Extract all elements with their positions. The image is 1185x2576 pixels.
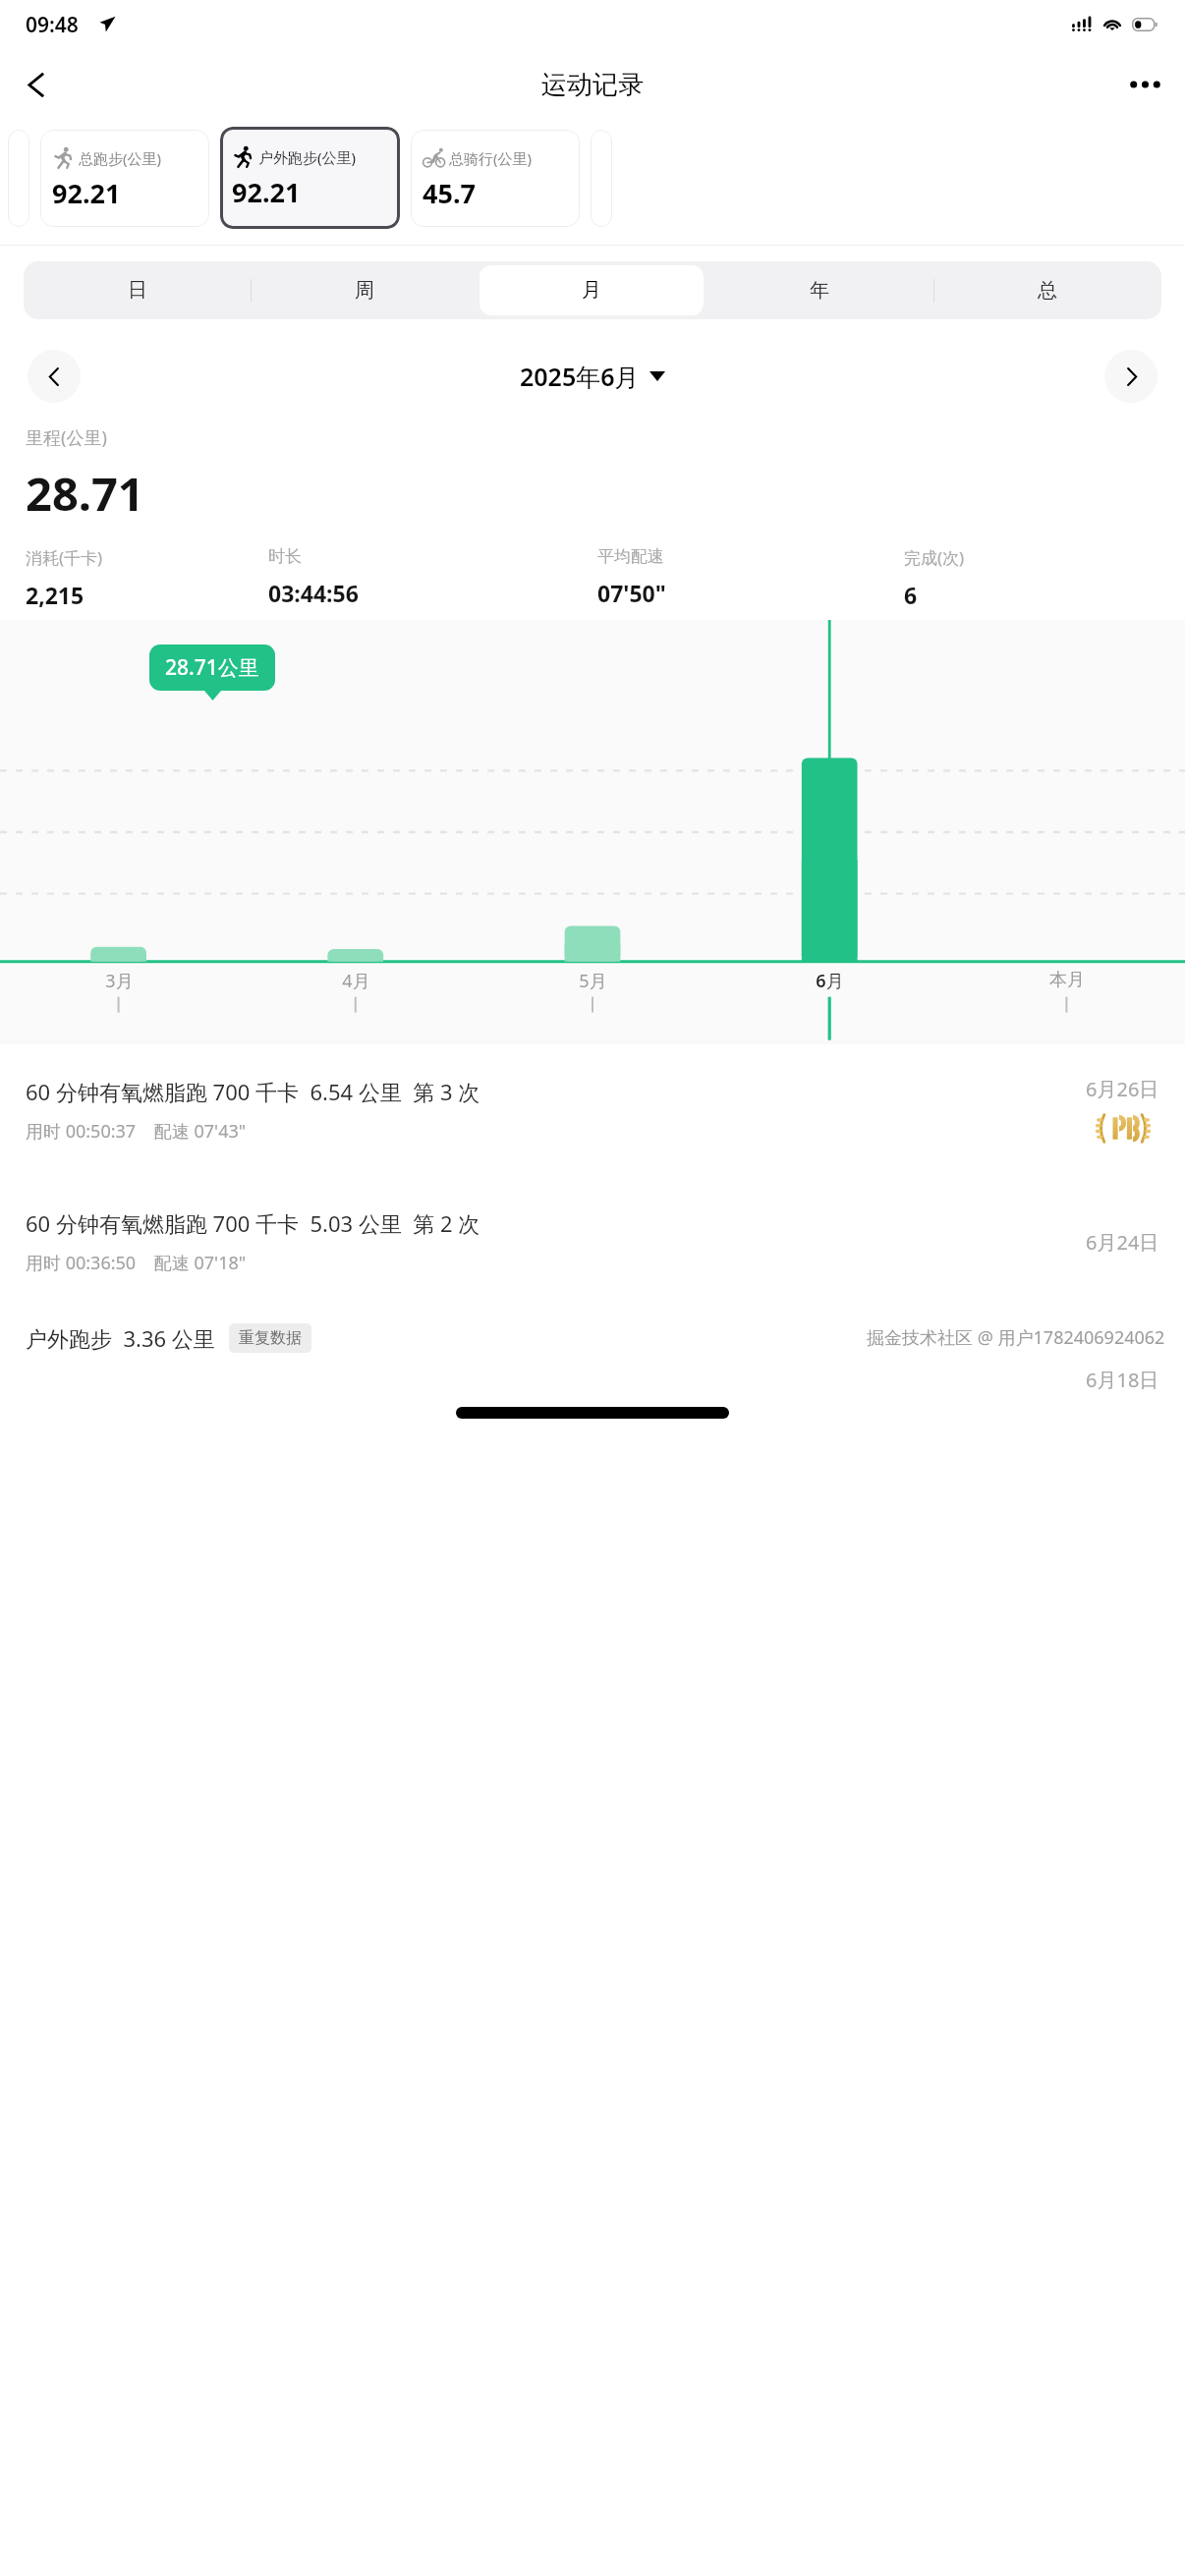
button[interactable]: 日	[24, 265, 251, 315]
staticText: 年	[810, 278, 829, 303]
button[interactable]: 60 分钟有氧燃脂跑 700 千卡 5.03 公里 第 2 次	[0, 1176, 1185, 1308]
button[interactable]: 2025年6月	[520, 360, 665, 393]
staticText: 6月24日	[1086, 1229, 1159, 1256]
button[interactable]: 户外跑步(公里)	[220, 127, 400, 229]
button[interactable]: 总	[933, 265, 1161, 315]
staticText: 5月	[579, 969, 607, 993]
staticText: 总骑行(公里)	[449, 148, 533, 168]
staticText: 用时 00:36:50 配速 07'18"	[26, 1251, 247, 1275]
button[interactable]: 月	[480, 265, 704, 315]
button[interactable]: Previous month	[28, 350, 81, 403]
staticText: 重复数据	[239, 1328, 302, 1348]
staticText: 总	[1038, 278, 1057, 303]
staticText: 2,215	[26, 580, 85, 610]
staticText: 完成(次)	[904, 546, 965, 569]
staticText: 日	[128, 278, 147, 303]
staticText: 03:44:56	[268, 578, 359, 608]
button[interactable]: 总骑行(公里)	[411, 130, 580, 227]
staticText: 本月	[1049, 969, 1085, 991]
staticText: 里程(公里)	[26, 425, 107, 450]
staticText: 09:48	[26, 11, 79, 39]
staticText: 运动记录	[541, 69, 644, 101]
button[interactable]: 年	[705, 265, 933, 315]
staticText: 2025年6月	[520, 360, 640, 393]
staticText: 60 分钟有氧燃脂跑 700 千卡 6.54 公里 第 3 次	[26, 1077, 480, 1106]
staticText: 92.21	[52, 175, 121, 211]
button[interactable]: 户外跑步 3.36 公里	[26, 1323, 311, 1353]
button[interactable]: Next sport type	[591, 130, 612, 227]
staticText: 时长	[268, 546, 302, 567]
staticText: 用时 00:50:37 配速 07'43"	[26, 1119, 247, 1144]
staticText: 6月18日	[1086, 1367, 1159, 1393]
staticText: 周	[355, 278, 374, 303]
staticText: 07'50"	[597, 578, 666, 608]
staticText: 4月	[342, 969, 370, 993]
staticText: 掘金技术社区 @ 用户1782406924062	[867, 1325, 1165, 1350]
staticText: 总跑步(公里)	[79, 148, 162, 168]
staticText: 3月	[105, 969, 134, 993]
staticText: 45.7	[423, 175, 476, 211]
button[interactable]: Back	[8, 56, 65, 113]
button[interactable]: More options	[1116, 56, 1173, 113]
button[interactable]: Previous sport type	[8, 130, 29, 227]
staticText: 6月	[816, 969, 844, 993]
staticText: 6	[904, 580, 918, 610]
staticText: 28.71公里	[165, 653, 259, 682]
staticText: 户外跑步 3.36 公里	[26, 1323, 215, 1353]
button[interactable]: 60 分钟有氧燃脂跑 700 千卡 6.54 公里 第 3 次	[0, 1044, 1185, 1176]
staticText: 60 分钟有氧燃脂跑 700 千卡 5.03 公里 第 2 次	[26, 1208, 480, 1238]
staticText: 月	[582, 278, 601, 303]
staticText: 户外跑步(公里)	[258, 147, 357, 167]
staticText: 6月26日	[1086, 1076, 1159, 1102]
staticText: 92.21	[232, 174, 301, 210]
staticText: 28.71	[26, 462, 144, 525]
button[interactable]: 周	[251, 265, 478, 315]
staticText: 消耗(千卡)	[26, 546, 103, 569]
staticText: 平均配速	[597, 546, 664, 567]
button[interactable]: Next month	[1104, 350, 1157, 403]
button[interactable]: 总跑步(公里)	[40, 130, 209, 227]
